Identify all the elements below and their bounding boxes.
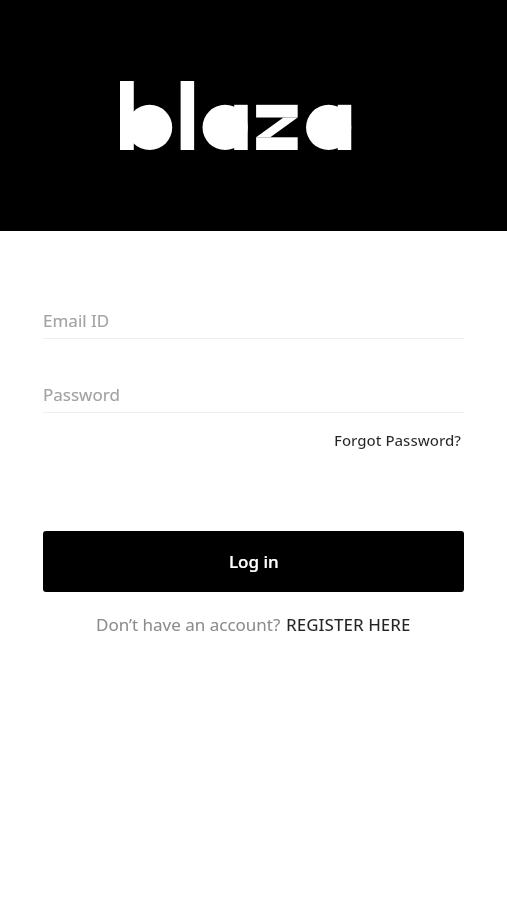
staticText: Forgot Password? bbox=[334, 430, 462, 450]
button[interactable]: Forgot Password? bbox=[332, 427, 464, 453]
button[interactable]: Log in bbox=[43, 531, 464, 592]
staticText: Email ID bbox=[43, 309, 110, 332]
staticText: REGISTER HERE bbox=[286, 613, 411, 636]
staticText: Log in bbox=[229, 550, 279, 573]
button[interactable]: Password bbox=[43, 383, 464, 413]
button[interactable]: Email ID bbox=[43, 309, 464, 339]
button[interactable]: REGISTER HERE bbox=[285, 611, 412, 638]
other: blaza bbox=[120, 81, 388, 150]
staticText: Password bbox=[43, 383, 120, 406]
staticText: Don’t have an account? bbox=[96, 613, 285, 636]
